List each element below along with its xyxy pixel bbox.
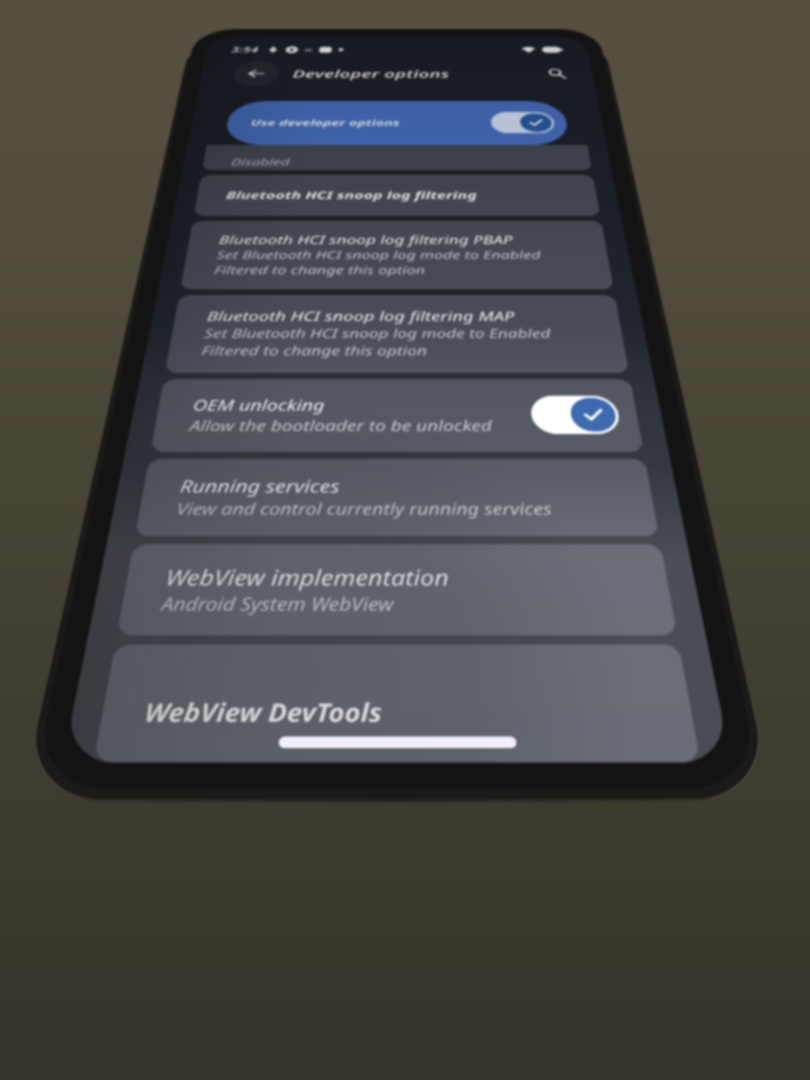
button[interactable]: Running services [135, 459, 659, 537]
staticText: Bluetooth HCI snoop log filtering MAP [206, 307, 515, 325]
staticText: Android System WebView [160, 591, 394, 617]
staticText: Set Bluetooth HCI snoop log mode to Enab… [203, 325, 552, 342]
staticText: Running services [179, 474, 341, 498]
button[interactable]: WebView implementation [116, 544, 677, 636]
staticText: WebView implementation [164, 562, 450, 591]
staticText: Set Bluetooth HCI snoop log mode to Enab… [215, 247, 542, 262]
staticText: Allow the bootloader to be unlocked [188, 415, 493, 435]
staticText: Developer options [292, 66, 450, 81]
staticText: View and control currently running servi… [175, 498, 553, 520]
button[interactable]: Back [232, 61, 281, 86]
button[interactable]: Bluetooth HCI snoop log filtering MAP [165, 295, 629, 373]
staticText: 3:54 [230, 44, 259, 55]
button[interactable]: Use developer options [223, 101, 570, 145]
button[interactable]: Disabled [202, 145, 592, 170]
staticText: OEM unlocking [191, 395, 326, 415]
staticText: Use developer options [250, 117, 400, 129]
staticText: Filtered to change this option [200, 342, 428, 359]
staticText: Disabled [230, 155, 291, 168]
staticText: WebView DevTools [142, 694, 382, 729]
button[interactable]: Search [538, 63, 577, 84]
button[interactable]: Bluetooth HCI snoop log filtering [193, 175, 600, 216]
button[interactable]: WebView DevTools [93, 644, 701, 762]
button[interactable]: OEM unlocking [150, 379, 644, 452]
staticText: w [304, 46, 313, 53]
button[interactable]: Bluetooth HCI snoop log filtering PBAP [180, 220, 614, 290]
staticText: Bluetooth HCI snoop log filtering [225, 188, 478, 202]
staticText: Bluetooth HCI snoop log filtering PBAP [218, 232, 514, 247]
staticText: Filtered to change this option [213, 262, 426, 278]
